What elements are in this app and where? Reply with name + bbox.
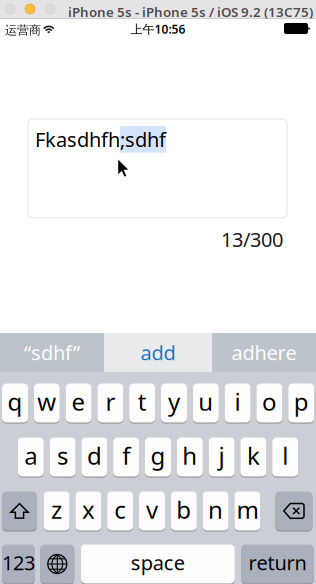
button[interactable]: g <box>145 437 171 477</box>
button[interactable]: n <box>203 491 229 531</box>
button[interactable]: f <box>113 437 139 477</box>
staticText: g <box>150 440 165 471</box>
button[interactable]: o <box>256 383 282 423</box>
button[interactable]: e <box>66 383 92 423</box>
button[interactable]: j <box>209 437 235 477</box>
button[interactable]: b <box>171 491 197 531</box>
button[interactable]: h <box>177 437 203 477</box>
staticText: b <box>176 494 191 525</box>
staticText: p <box>294 386 309 417</box>
button[interactable]: “sdhf” <box>0 333 104 372</box>
staticText: 123 <box>2 549 35 576</box>
button[interactable]: v <box>139 491 165 531</box>
staticText: add <box>140 339 175 366</box>
staticText: 运营商 <box>5 23 41 38</box>
button[interactable]: i <box>225 383 251 423</box>
button[interactable]: t <box>129 383 155 423</box>
staticText: r <box>105 386 115 417</box>
staticText: k <box>247 440 260 471</box>
button[interactable]: w <box>34 383 60 423</box>
staticText: 13/300 <box>221 226 283 253</box>
button[interactable]: Next keyboard <box>40 544 74 584</box>
button[interactable]: return <box>241 544 314 584</box>
button[interactable]: d <box>81 437 107 477</box>
button[interactable]: k <box>240 437 266 477</box>
staticText: y <box>168 386 180 417</box>
button[interactable]: u <box>193 383 219 423</box>
button[interactable]: a <box>18 437 44 477</box>
staticText: v <box>146 494 158 525</box>
button[interactable]: Delete <box>275 491 312 531</box>
staticText: iPhone 5s - iPhone 5s / iOS 9.2 (13C75) <box>68 3 313 21</box>
button[interactable]: Shift <box>2 491 37 531</box>
staticText: space <box>131 549 185 576</box>
button[interactable]: q <box>2 383 28 423</box>
button[interactable]: 123 <box>2 544 35 584</box>
button[interactable]: r <box>97 383 123 423</box>
staticText: “sdhf” <box>24 339 80 366</box>
button[interactable]: add <box>104 333 211 372</box>
button[interactable]: c <box>107 491 133 531</box>
staticText: m <box>236 494 258 525</box>
staticText: q <box>7 386 22 417</box>
staticText: a <box>24 440 37 471</box>
button[interactable]: m <box>234 491 260 531</box>
staticText: d <box>87 440 102 471</box>
button[interactable]: s <box>50 437 76 477</box>
staticText: c <box>114 494 126 525</box>
staticText: x <box>82 494 95 525</box>
staticText: 上午10:56 <box>130 21 185 37</box>
staticText: u <box>198 386 213 417</box>
staticText: Fkasdhfh <box>35 126 120 153</box>
staticText: s <box>57 440 68 471</box>
button[interactable]: space <box>81 544 235 584</box>
staticText: t <box>138 386 147 417</box>
staticText: w <box>37 386 56 417</box>
staticText: n <box>208 494 223 525</box>
staticText: i <box>235 386 241 417</box>
button[interactable]: l <box>272 437 298 477</box>
staticText: adhere <box>231 339 296 366</box>
button[interactable]: z <box>44 491 70 531</box>
staticText: h <box>182 440 197 471</box>
staticText: f <box>122 440 130 471</box>
staticText: o <box>262 386 277 417</box>
button[interactable]: p <box>288 383 314 423</box>
staticText: e <box>72 386 86 417</box>
staticText: z <box>51 494 62 525</box>
button[interactable]: x <box>75 491 101 531</box>
button[interactable]: adhere <box>212 333 316 372</box>
staticText: ;sdhf <box>120 126 166 153</box>
staticText: l <box>282 440 288 471</box>
staticText: j <box>219 440 225 471</box>
button[interactable]: y <box>161 383 187 423</box>
staticText: return <box>249 549 307 576</box>
